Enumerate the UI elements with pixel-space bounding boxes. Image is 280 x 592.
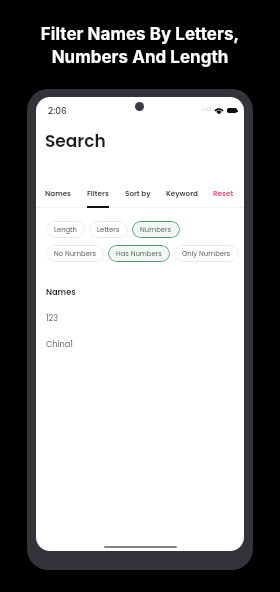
button[interactable]: Names [45,188,72,208]
button[interactable]: Numbers [132,221,180,238]
staticText: Names [46,286,76,297]
staticText: Length [54,225,77,235]
staticText: Reset [213,188,234,198]
button[interactable]: Filters [87,188,109,208]
button[interactable]: Sort by [125,188,151,208]
button[interactable]: Has Numbers [108,245,170,262]
staticText: No Numbers [54,249,96,259]
button[interactable]: Only Numbers [174,245,239,262]
staticText: Search [45,129,106,153]
staticText: Letters [97,225,120,235]
staticText: Names [45,188,72,198]
staticText: Has Numbers [116,249,162,259]
button[interactable]: Reset [213,188,234,208]
button[interactable]: China1 [36,338,244,350]
staticText: Numbers [140,225,172,235]
staticText: 123 [46,312,59,323]
staticText: Sort by [125,188,151,198]
staticText: Keyword [166,188,198,198]
staticText: Filter Names By Letters, Numbers And Len… [0,24,280,68]
button[interactable]: Length [46,221,85,238]
staticText: China1 [46,338,73,349]
button[interactable]: No Numbers [46,245,104,262]
button[interactable]: 123 [36,312,244,324]
staticText: Filters [87,188,109,198]
button[interactable]: Keyword [166,188,198,208]
staticText: 2:06 [48,105,67,117]
button[interactable]: Letters [89,221,128,238]
staticText: Only Numbers [182,249,231,259]
